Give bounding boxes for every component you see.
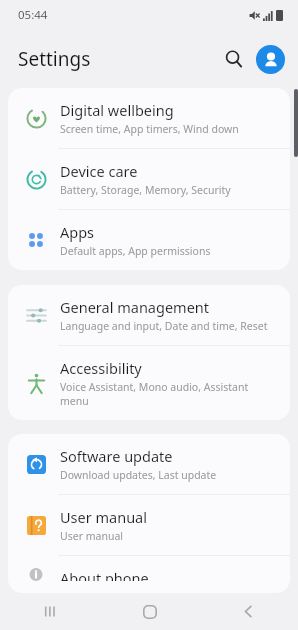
- staticText: Battery, Storage, Memory, Security: [60, 183, 231, 197]
- staticText: User manual: [60, 529, 123, 543]
- staticText: Digital wellbeing: [60, 100, 174, 120]
- button[interactable]: Search: [217, 42, 251, 76]
- button[interactable]: Recents: [0, 593, 100, 630]
- staticText: Default apps, App permissions: [60, 244, 211, 258]
- button[interactable]: Back: [199, 593, 298, 630]
- button[interactable]: Home: [100, 593, 199, 630]
- button[interactable]: Apps: [8, 210, 290, 270]
- button[interactable]: Accessibility: [8, 346, 290, 420]
- button[interactable]: About phone: [8, 556, 290, 593]
- button[interactable]: Device care: [8, 149, 290, 209]
- staticText: Download updates, Last update: [60, 468, 217, 482]
- button[interactable]: User manual: [8, 495, 290, 555]
- staticText: General management: [60, 297, 210, 317]
- button[interactable]: Account: [256, 45, 285, 74]
- staticText: Software update: [60, 446, 173, 466]
- staticText: Settings: [18, 46, 91, 72]
- button[interactable]: General management: [8, 285, 290, 345]
- button[interactable]: Software update: [8, 434, 290, 494]
- staticText: About phone: [60, 568, 149, 581]
- staticText: Apps: [60, 222, 95, 242]
- staticText: Accessibility: [60, 358, 142, 378]
- staticText: Screen time, App timers, Wind down: [60, 122, 239, 136]
- staticText: User manual: [60, 507, 147, 527]
- staticText: Device care: [60, 161, 138, 181]
- staticText: 05:44: [18, 7, 48, 23]
- staticText: Language and input, Date and time, Reset: [60, 319, 268, 333]
- button[interactable]: Digital wellbeing: [8, 88, 290, 148]
- staticText: Voice Assistant, Mono audio, Assistant m…: [60, 380, 274, 408]
